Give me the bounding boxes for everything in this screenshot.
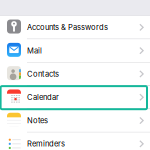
staticText: Calendar	[27, 93, 59, 102]
staticText: Accounts & Passwords	[27, 23, 108, 32]
staticText: Mail	[27, 46, 42, 55]
button[interactable]: Notes	[0, 109, 150, 132]
button[interactable]: Reminders	[0, 132, 150, 150]
staticText: Reminders	[27, 139, 65, 148]
staticText: Notes	[27, 116, 48, 125]
button[interactable]: Accounts & Passwords	[0, 16, 150, 39]
staticText: Contacts	[27, 69, 59, 79]
button[interactable]: Mail	[0, 39, 150, 63]
button[interactable]: Contacts	[0, 63, 150, 86]
button[interactable]: Calendar	[0, 86, 150, 109]
